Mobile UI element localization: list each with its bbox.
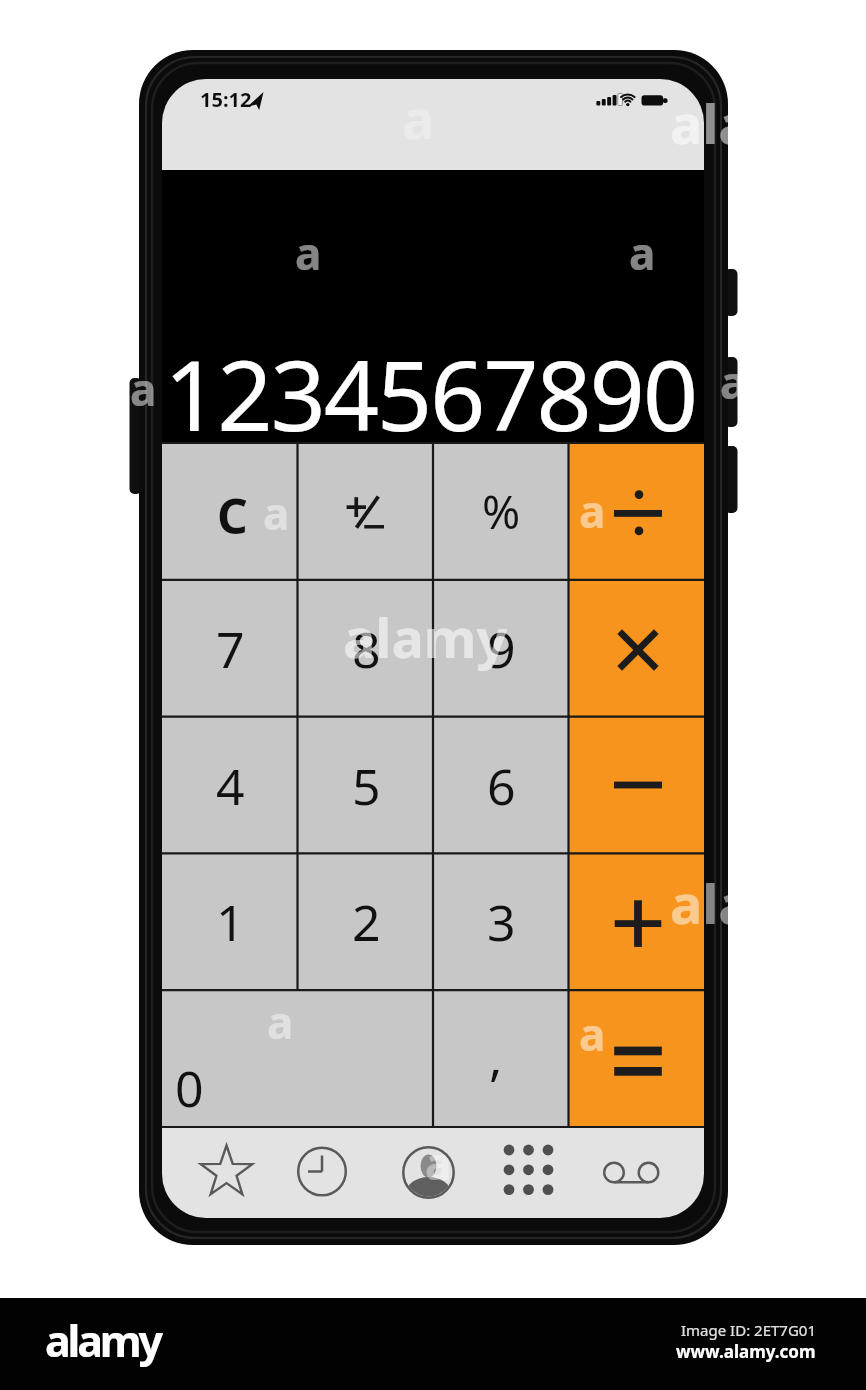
staticText: 6 [487,752,516,820]
button[interactable] [569,580,705,717]
staticText: a [425,1133,452,1193]
button[interactable] [569,853,705,990]
button[interactable] [397,1141,461,1205]
staticText: 8 [352,615,381,683]
staticText: a [629,223,656,283]
button[interactable]: 4 [162,717,298,854]
staticText: 1 [216,888,245,956]
staticText: 5 [352,752,381,820]
staticText: alamy [670,866,835,940]
button[interactable] [195,1141,259,1205]
staticText: 1234567890 [164,327,696,459]
button[interactable]: 8 [298,580,434,717]
staticText: alamy [343,600,508,674]
button[interactable]: 5 [298,717,434,854]
staticText: a [579,481,606,541]
button[interactable]: 2 [298,853,434,990]
button[interactable]: , [428,988,564,1125]
staticText: alamy [45,1311,160,1370]
button[interactable] [569,717,705,854]
staticText: C [217,483,248,548]
staticText: a [720,352,747,412]
staticText: 4 [216,752,245,820]
staticText: % [482,480,521,543]
staticText: a [579,1004,606,1064]
staticText: 3 [487,888,516,956]
staticText: a [130,359,157,419]
staticText: 0 [175,1054,204,1122]
staticText: 9 [487,615,516,683]
button[interactable] [569,443,705,580]
staticText: 2 [352,888,381,956]
button[interactable] [569,990,705,1127]
staticText: a [402,81,435,155]
button[interactable]: 0 [162,990,433,1127]
staticText: a [267,992,294,1052]
staticText: a [295,223,322,283]
button[interactable] [290,1141,354,1205]
button[interactable]: 6 [433,717,569,854]
staticText: 15:12 [200,86,252,113]
staticText: www.alamy.com [676,1340,816,1362]
staticText: 7 [216,615,245,683]
staticText: , [489,1023,503,1091]
staticText: a [263,483,290,543]
staticText: alamy [670,86,835,160]
button[interactable] [599,1141,663,1205]
button[interactable] [497,1141,561,1205]
staticText: Image ID: 2ET7G01 [681,1320,816,1340]
button[interactable]: 7 [162,580,298,717]
button[interactable]: 9 [433,580,569,717]
button[interactable]: C [164,447,300,584]
button[interactable]: 1 [162,853,298,990]
button[interactable] [298,443,434,580]
button[interactable]: 3 [433,853,569,990]
button[interactable]: % [433,443,569,580]
